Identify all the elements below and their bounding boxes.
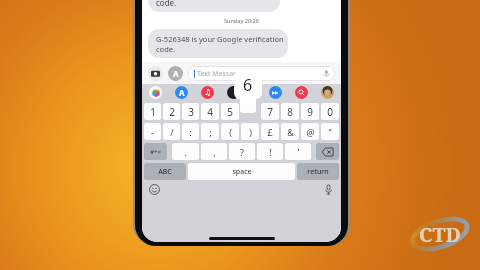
button[interactable]: Photos	[149, 86, 162, 99]
button[interactable]: 8	[281, 103, 299, 120]
button[interactable]: :	[182, 123, 199, 140]
staticText: ,	[213, 146, 216, 158]
staticText: /	[170, 126, 174, 138]
staticText: ABC	[158, 167, 172, 177]
staticText: !	[269, 146, 272, 158]
staticText: 7	[267, 105, 273, 119]
staticText: ?	[240, 146, 244, 158]
button[interactable]: Memoji	[321, 86, 334, 99]
button[interactable]: Music	[201, 86, 214, 99]
staticText: CTD	[419, 221, 461, 248]
button[interactable]: Dictation	[323, 184, 334, 195]
staticText: A	[173, 68, 179, 79]
staticText: 2	[169, 105, 175, 119]
button[interactable]: Apps	[168, 66, 183, 81]
staticText: 3	[188, 105, 194, 119]
staticText: Text Message	[197, 69, 242, 79]
staticText: 0	[327, 105, 333, 119]
staticText: "	[328, 126, 332, 138]
button[interactable]: £	[261, 123, 279, 140]
button[interactable]: 9	[301, 103, 319, 120]
button[interactable]: Camera	[148, 66, 163, 81]
button[interactable]: ABC	[144, 163, 186, 180]
button[interactable]: 0	[321, 103, 339, 120]
button[interactable]: Digital Touch	[269, 86, 282, 99]
staticText: G-526348 is your Google verification	[156, 34, 284, 44]
button[interactable]: ;	[201, 123, 219, 140]
staticText: #+=	[150, 148, 161, 156]
staticText: :	[189, 126, 192, 138]
staticText: code.	[156, 44, 175, 54]
staticText: space	[232, 167, 252, 177]
staticText: @	[306, 126, 315, 138]
button[interactable]: "	[321, 123, 339, 140]
button[interactable]: return	[297, 163, 339, 180]
staticText: '	[297, 146, 300, 158]
button[interactable]: 4	[201, 103, 219, 120]
staticText: 5	[227, 105, 233, 119]
button[interactable]: App	[227, 86, 240, 99]
staticText: 8	[287, 105, 293, 119]
button[interactable]: !	[257, 143, 283, 160]
staticText: A	[179, 87, 185, 98]
staticText: &	[287, 126, 294, 138]
button[interactable]: Text Message	[188, 66, 335, 81]
staticText: 6	[243, 74, 253, 96]
button[interactable]: 6	[234, 71, 262, 99]
button[interactable]: Delete	[316, 143, 339, 160]
staticText: ;	[209, 126, 212, 138]
button[interactable]: 1	[144, 103, 161, 120]
button[interactable]: 7	[261, 103, 279, 120]
staticText: (	[229, 126, 232, 138]
button[interactable]: Emoji	[149, 184, 160, 195]
button[interactable]: Search	[295, 86, 308, 99]
button[interactable]: .	[172, 143, 199, 160]
button[interactable]: -	[144, 123, 161, 140]
button[interactable]: space	[188, 163, 295, 180]
button[interactable]: /	[163, 123, 180, 140]
button[interactable]: ,	[201, 143, 227, 160]
button[interactable]: #+=	[144, 143, 167, 160]
staticText: -	[151, 126, 154, 138]
staticText: code.	[156, 0, 177, 8]
button[interactable]: 2	[163, 103, 180, 120]
staticText: ♫	[204, 88, 212, 97]
staticText: )	[249, 126, 252, 138]
staticText: 9	[307, 105, 313, 119]
button[interactable]: 3	[182, 103, 199, 120]
staticText: 1	[150, 105, 156, 119]
staticText: .	[184, 146, 187, 158]
button[interactable]: (	[221, 123, 239, 140]
staticText: return	[307, 167, 329, 177]
button[interactable]: '	[285, 143, 311, 160]
staticText: 4	[207, 105, 213, 119]
staticText: £	[267, 126, 273, 138]
button[interactable]: ?	[229, 143, 255, 160]
button[interactable]: @	[301, 123, 319, 140]
button[interactable]: &	[281, 123, 299, 140]
button[interactable]: 5	[221, 103, 239, 120]
staticText: ▶▶	[272, 90, 279, 95]
button[interactable]: )	[241, 123, 259, 140]
staticText: Sunday 20:26	[224, 17, 259, 24]
button[interactable]: App Store	[175, 86, 188, 99]
